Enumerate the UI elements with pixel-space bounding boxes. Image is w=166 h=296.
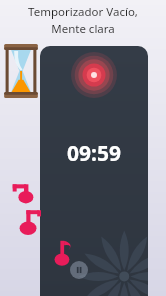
staticText: 09:59 bbox=[67, 139, 121, 168]
button[interactable]: Grabar bbox=[71, 52, 117, 98]
staticText: Mente clara bbox=[51, 21, 115, 37]
staticText: Temporizador Vacío, bbox=[28, 4, 138, 20]
button[interactable]: Pausa bbox=[70, 261, 88, 279]
